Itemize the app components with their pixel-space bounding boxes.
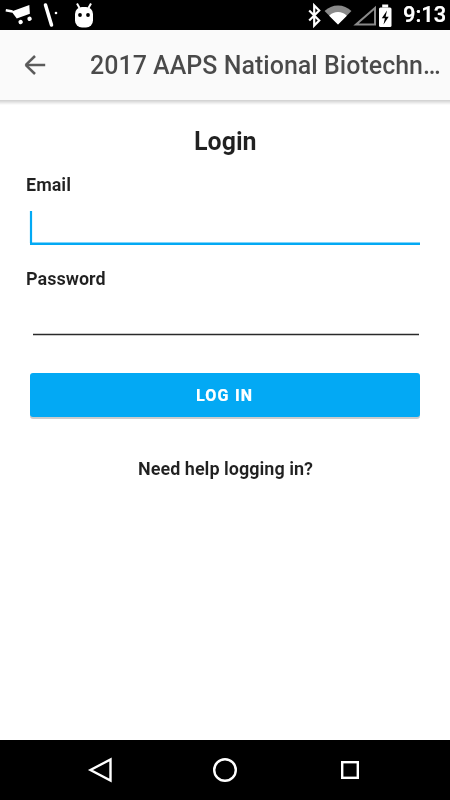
- button[interactable]: LOG IN: [30, 373, 420, 417]
- button[interactable]: [326, 746, 374, 794]
- staticText: Login: [194, 127, 257, 156]
- staticText: LOG IN: [196, 386, 254, 405]
- button[interactable]: [76, 746, 124, 794]
- button[interactable]: Need help logging in?: [132, 452, 319, 485]
- staticText: Password: [26, 268, 106, 289]
- staticText: 2017 AAPS National Biotechnology Confere…: [90, 51, 447, 80]
- staticText: 9:13: [403, 2, 447, 28]
- staticText: Email: [26, 174, 71, 195]
- button[interactable]: [0, 30, 64, 100]
- staticText: Need help logging in?: [138, 458, 313, 479]
- button[interactable]: [30, 205, 420, 245]
- button[interactable]: [30, 300, 420, 335]
- button[interactable]: [201, 746, 249, 794]
